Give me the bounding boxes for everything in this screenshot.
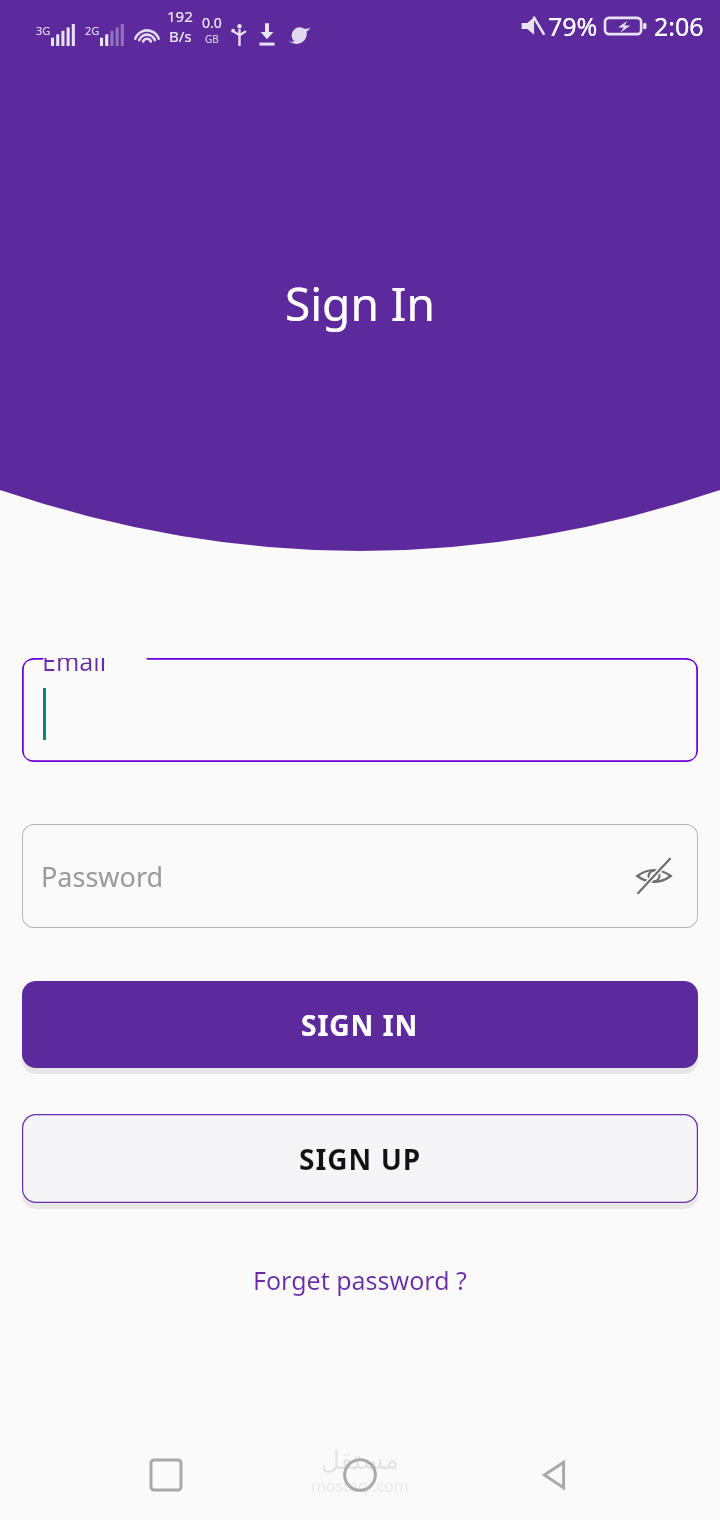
staticText: 0.0: [202, 13, 222, 32]
staticText: Sign In: [285, 272, 435, 335]
staticText: SIGN UP: [299, 1140, 422, 1178]
staticText: 192: [167, 6, 193, 26]
staticText: 3G: [36, 23, 51, 38]
button[interactable]: Email: [22, 658, 698, 762]
button[interactable]: Password: [22, 824, 698, 928]
button[interactable]: Back: [526, 1447, 582, 1503]
staticText: GB: [205, 32, 219, 46]
staticText: Forget password ?: [253, 1263, 467, 1297]
button[interactable]: SIGN IN: [22, 981, 698, 1068]
staticText: 2:06: [654, 9, 704, 43]
button[interactable]: Show password: [628, 850, 680, 902]
button[interactable]: Forget password ?: [239, 1255, 481, 1305]
button[interactable]: Home: [332, 1447, 388, 1503]
button[interactable]: Recents: [138, 1447, 194, 1503]
staticText: mostaql.com: [311, 1475, 409, 1497]
staticText: Password: [41, 858, 164, 895]
button[interactable]: SIGN UP: [22, 1114, 698, 1203]
staticText: 79%: [548, 9, 598, 43]
staticText: مستقل: [321, 1445, 399, 1475]
staticText: 2G: [85, 23, 100, 38]
staticText: SIGN IN: [301, 1006, 419, 1044]
staticText: Email: [42, 658, 107, 678]
staticText: B/s: [169, 26, 192, 46]
